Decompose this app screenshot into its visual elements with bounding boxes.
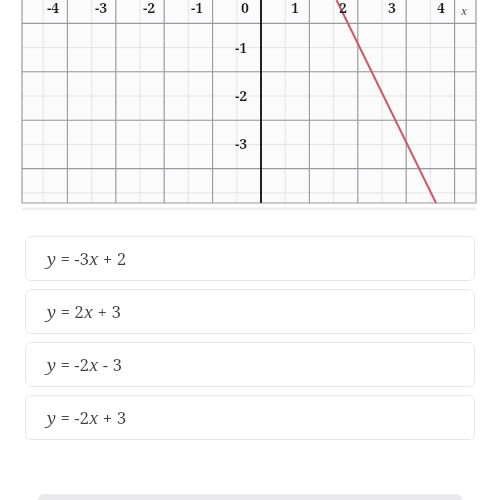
staticText: 3	[388, 0, 396, 17]
button[interactable]: y = -3x + 2	[25, 236, 475, 281]
staticText: y = 2x + 3	[47, 300, 121, 323]
staticText: -1	[191, 0, 204, 17]
button[interactable]: y = -2x - 3	[25, 342, 475, 387]
button[interactable]: y = -2x + 3	[25, 395, 475, 440]
staticText: y = -3x + 2	[47, 247, 127, 270]
staticText: -3	[95, 0, 108, 17]
staticText: 0	[241, 0, 249, 17]
staticText: 2	[339, 0, 347, 17]
staticText: x	[461, 3, 468, 18]
staticText: -1	[235, 38, 248, 57]
staticText: 4	[437, 0, 445, 17]
staticText: y = -2x + 3	[47, 406, 127, 429]
button[interactable]: y = 2x + 3	[25, 289, 475, 334]
staticText: -2	[143, 0, 156, 17]
staticText: -4	[47, 0, 60, 17]
staticText: -3	[235, 134, 248, 153]
staticText: y = -2x - 3	[47, 353, 122, 376]
staticText: -2	[235, 86, 248, 105]
staticText: 1	[291, 0, 299, 17]
